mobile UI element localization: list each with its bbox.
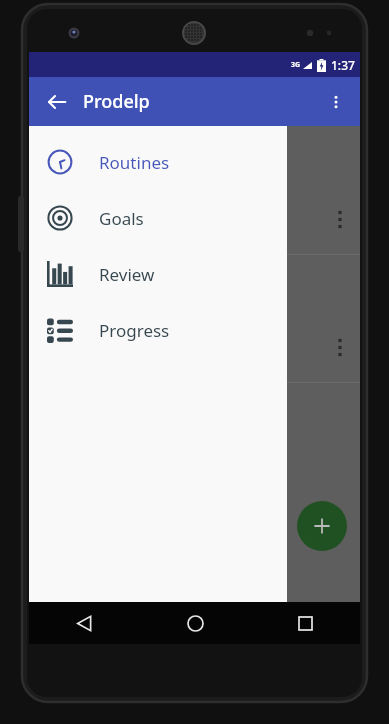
- button[interactable]: Item options: [328, 334, 352, 360]
- button[interactable]: Progress: [29, 302, 287, 358]
- button[interactable]: Back: [29, 602, 140, 644]
- button[interactable]: Home: [140, 602, 250, 644]
- button[interactable]: Item options: [328, 206, 352, 232]
- staticText: Progress: [99, 319, 170, 342]
- staticText: Routines: [99, 151, 170, 174]
- staticText: 3G: [291, 60, 301, 70]
- button[interactable]: Goals: [29, 190, 287, 246]
- button[interactable]: More options: [317, 83, 355, 121]
- button[interactable]: Add: [297, 501, 347, 551]
- button[interactable]: Back: [39, 84, 75, 120]
- staticText: Prodelp: [83, 89, 150, 114]
- staticText: Goals: [99, 207, 144, 230]
- staticText: 1:37: [331, 57, 355, 73]
- button[interactable]: Recent apps: [250, 602, 360, 644]
- staticText: Review: [99, 263, 155, 286]
- button[interactable]: Routines: [29, 134, 287, 190]
- button[interactable]: Review: [29, 246, 287, 302]
